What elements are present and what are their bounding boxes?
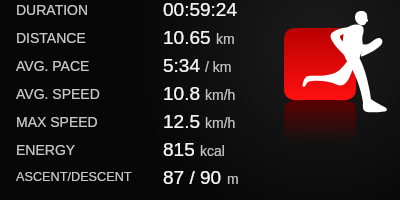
staticText: 10.65 bbox=[163, 27, 211, 48]
button[interactable]: MAX SPEED bbox=[0, 112, 400, 140]
button[interactable]: ASCENT/DESCENT bbox=[0, 168, 400, 196]
staticText: ENERGY bbox=[16, 142, 76, 158]
staticText: km/h bbox=[205, 87, 236, 103]
staticText: DURATION bbox=[16, 2, 89, 18]
staticText: 00:59:24 bbox=[163, 0, 237, 20]
button[interactable]: Running app logo bbox=[0, 0, 400, 200]
staticText: kcal bbox=[200, 143, 225, 159]
staticText: AVG. PACE bbox=[16, 58, 90, 74]
button[interactable]: AVG. PACE bbox=[0, 56, 400, 84]
staticText: m bbox=[227, 171, 239, 187]
staticText: AVG. SPEED bbox=[16, 86, 100, 102]
staticText: DISTANCE bbox=[16, 30, 86, 46]
staticText: 5:34 bbox=[163, 55, 200, 76]
button[interactable]: AVG. SPEED bbox=[0, 84, 400, 112]
staticText: MAX SPEED bbox=[16, 114, 98, 130]
staticText: 815 bbox=[163, 139, 195, 160]
staticText: km bbox=[216, 31, 235, 47]
staticText: km/h bbox=[205, 115, 236, 131]
button[interactable]: DISTANCE bbox=[0, 28, 400, 56]
staticText: 87 / 90 bbox=[163, 167, 222, 188]
staticText: ASCENT/DESCENT bbox=[16, 170, 132, 184]
staticText: / km bbox=[205, 59, 232, 75]
button[interactable]: DURATION bbox=[0, 0, 400, 28]
staticText: 10.8 bbox=[163, 83, 200, 104]
staticText: 12.5 bbox=[163, 111, 200, 132]
button[interactable]: ENERGY bbox=[0, 140, 400, 168]
